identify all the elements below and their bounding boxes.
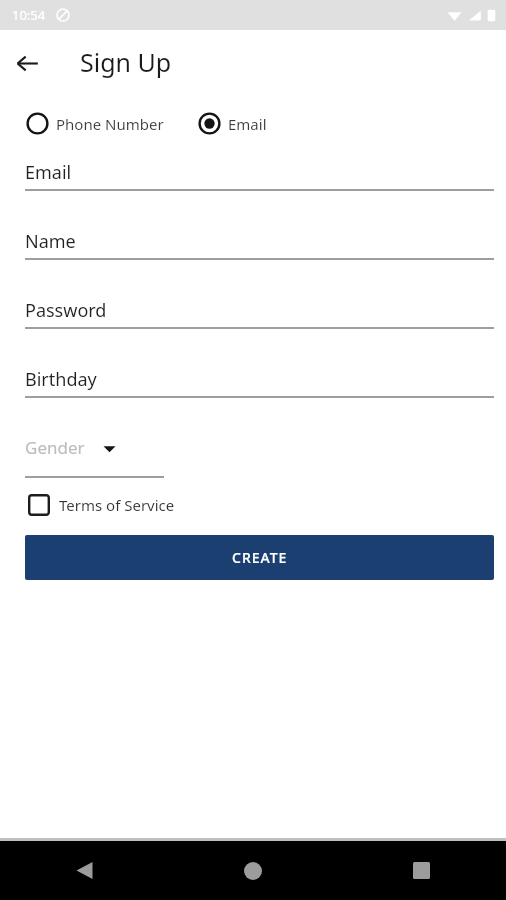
button[interactable]: Terms of Service <box>28 494 175 516</box>
staticText: Email <box>228 114 267 134</box>
staticText: Phone Number <box>56 114 164 134</box>
button[interactable]: Home <box>168 841 337 900</box>
staticText: Name <box>25 229 76 254</box>
staticText: Password <box>25 298 107 323</box>
button[interactable]: Password <box>25 298 494 367</box>
button[interactable]: Recent apps <box>337 841 506 900</box>
button[interactable]: Birthday <box>25 367 494 436</box>
staticText: 10:54 <box>12 6 46 24</box>
button[interactable]: Back <box>0 841 168 900</box>
button[interactable]: Phone Number <box>26 112 164 135</box>
button[interactable]: Email <box>25 160 494 229</box>
button[interactable]: CREATE <box>25 535 494 580</box>
staticText: CREATE <box>232 548 288 567</box>
staticText: Terms of Service <box>59 495 175 515</box>
staticText: Gender <box>25 436 85 459</box>
staticText: Email <box>25 160 72 185</box>
button[interactable]: Email <box>198 112 267 135</box>
staticText: Sign Up <box>80 45 172 79</box>
staticText: Birthday <box>25 367 97 392</box>
button[interactable]: Name <box>25 229 494 298</box>
button[interactable]: Gender <box>25 436 164 478</box>
button[interactable]: Back <box>7 43 47 83</box>
